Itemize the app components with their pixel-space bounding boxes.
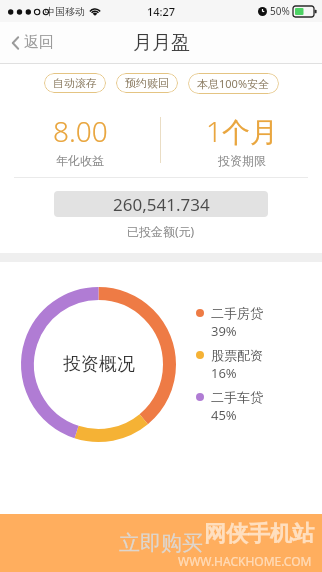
staticText: 股票配资 [211,347,263,363]
button[interactable]: 返回 [0,22,68,63]
staticText: WWW.HACKHOME.COM [178,553,312,569]
staticText: 14:27 [147,4,176,19]
staticText: 中国移动 [45,5,85,18]
staticText: 1个月 [206,112,278,150]
staticText: 45% [211,406,237,424]
button[interactable]: 预约赎回 [116,73,178,93]
button[interactable]: 立即购买 [0,514,322,572]
staticText: 年化收益 [56,153,104,168]
staticText: 预约赎回 [125,76,169,90]
staticText: 本息100%安全 [197,76,270,91]
staticText: 网侠手机站 [204,520,314,548]
staticText: 260,541.734 [113,193,210,216]
staticText: 投资期限 [218,153,266,168]
staticText: 月月盈 [133,31,190,55]
staticText: 立即购买 [119,530,203,556]
staticText: 16% [211,364,237,382]
staticText: 已投金额(元) [127,223,195,239]
staticText: 二手房贷 [211,305,263,321]
staticText: 二手车贷 [211,389,263,405]
staticText: 39% [211,322,237,340]
button[interactable]: 自动滚存 [44,73,106,93]
staticText: 50% [270,4,290,18]
staticText: 自动滚存 [53,76,97,90]
staticText: 投资概况 [63,353,135,376]
button[interactable]: 本息100%安全 [188,73,279,94]
staticText: 返回 [24,33,54,52]
staticText: 8.00 [53,112,108,150]
